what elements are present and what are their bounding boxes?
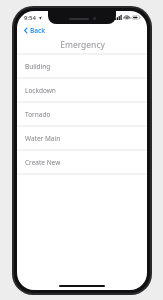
staticText: Emergency bbox=[60, 39, 105, 51]
staticText: Tornado bbox=[25, 110, 51, 119]
button[interactable]: Water Main bbox=[17, 127, 147, 149]
button[interactable]: Lockdown bbox=[17, 79, 147, 101]
staticText: Water Main bbox=[25, 134, 61, 143]
staticText: Building bbox=[25, 62, 51, 71]
button[interactable]: Building bbox=[17, 55, 147, 77]
staticText: Back bbox=[30, 26, 46, 35]
button[interactable]: Tornado bbox=[17, 103, 147, 125]
staticText: 9:54 bbox=[24, 14, 36, 22]
button[interactable]: Create New bbox=[17, 151, 147, 173]
button[interactable]: Back bbox=[22, 25, 48, 36]
staticText: Lockdown bbox=[25, 86, 56, 95]
staticText: Create New bbox=[25, 158, 61, 167]
